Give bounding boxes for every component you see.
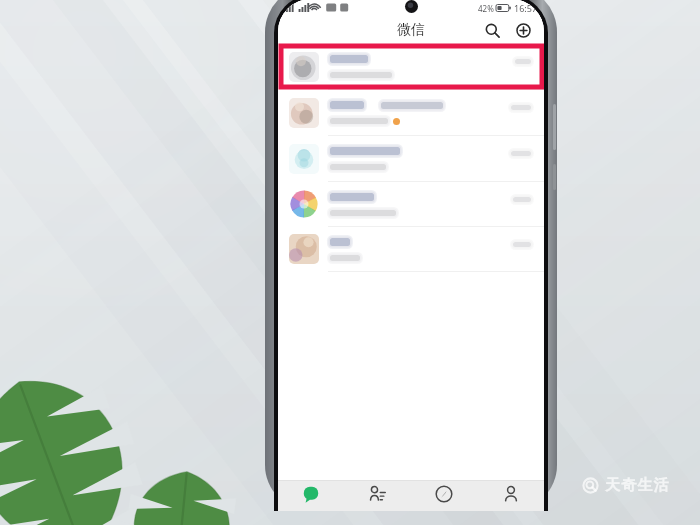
button[interactable]: Add [511, 18, 535, 42]
button[interactable] [278, 136, 544, 182]
button[interactable]: Contacts [344, 481, 410, 511]
staticText: 微信 [397, 21, 425, 39]
button[interactable] [278, 227, 544, 272]
button[interactable]: Me [477, 481, 544, 511]
staticText: 天奇生活 [605, 476, 670, 495]
staticText: 42% [478, 3, 494, 14]
button[interactable]: Discover [410, 481, 477, 511]
button[interactable] [278, 90, 544, 136]
button[interactable]: Search [480, 18, 504, 42]
staticText: 16:57 [514, 2, 538, 14]
button[interactable] [278, 182, 544, 227]
button[interactable] [279, 44, 544, 89]
button[interactable] [278, 44, 544, 90]
button[interactable]: Chats [278, 481, 344, 511]
